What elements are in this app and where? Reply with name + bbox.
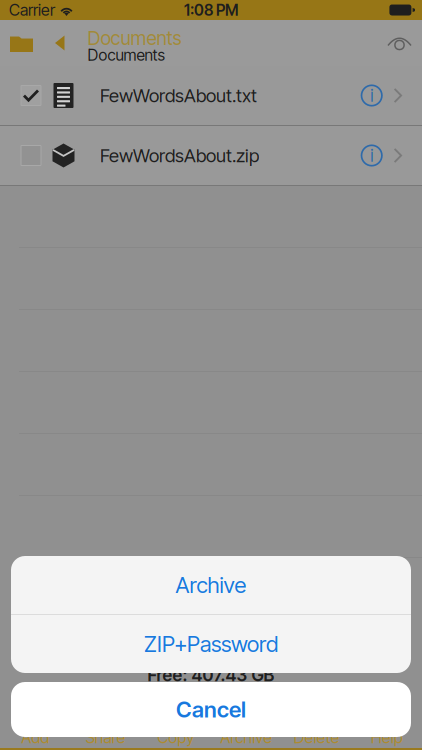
staticText: i [370,145,373,166]
button[interactable]: Back [33,35,64,50]
button[interactable]: Help [352,708,422,748]
staticText: 1:08 PM [184,1,238,19]
button[interactable]: Folders [0,34,33,52]
button[interactable]: Preview [388,35,422,50]
staticText: Documents [87,45,164,64]
staticText: Copy [157,728,194,747]
staticText: Help [371,728,403,747]
staticText: Share [85,728,125,747]
staticText: Delete [293,728,339,747]
button[interactable]: Archive [211,708,281,748]
button[interactable]: Copy [141,708,211,748]
staticText: Archive [175,572,246,598]
staticText: Add [21,728,49,747]
staticText: Free: 407.43 GB [147,664,274,685]
staticText: Documents [87,26,181,49]
button[interactable]: FewWordsAbout.zip [0,126,422,185]
button[interactable]: ZIP+Password [11,615,411,673]
staticText: FewWordsAbout.zip [100,144,259,167]
staticText: ZIP+Password [144,631,278,657]
button[interactable]: Cancel [11,682,411,737]
button[interactable]: Delete [281,708,352,748]
staticText: Archive [220,728,272,747]
button[interactable]: FewWordsAbout.txt [0,66,422,125]
button[interactable]: Add [0,708,70,748]
button[interactable]: Share [70,708,141,748]
staticText: FewWordsAbout.txt [100,84,257,107]
staticText: Carrier [9,0,55,20]
button[interactable]: Archive [11,556,411,614]
staticText: i [370,85,373,106]
staticText: Cancel [176,696,246,723]
